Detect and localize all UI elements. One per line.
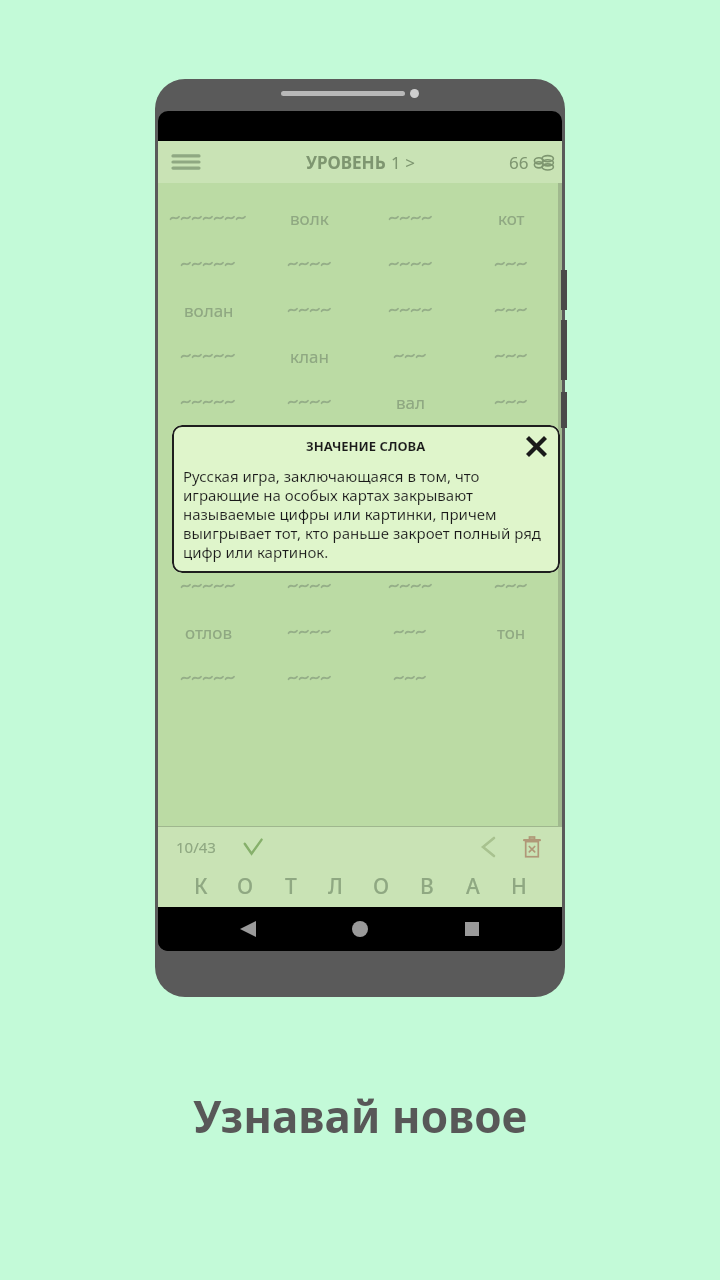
staticText: Л	[328, 872, 343, 901]
button[interactable]	[360, 517, 461, 563]
staticText: волк	[290, 207, 329, 230]
button[interactable]: кот	[461, 195, 562, 241]
button[interactable]: Check	[238, 832, 268, 862]
button[interactable]: Н	[496, 867, 542, 905]
button[interactable]: К	[178, 867, 223, 905]
staticText: Н	[511, 872, 527, 901]
button[interactable]	[360, 655, 461, 701]
button[interactable]	[158, 241, 259, 287]
button[interactable]: клан	[259, 333, 360, 379]
staticText: 1 >	[391, 151, 415, 174]
button[interactable]: тон	[461, 609, 562, 655]
button[interactable]: Л	[313, 867, 358, 905]
button[interactable]	[259, 655, 360, 701]
button[interactable]	[360, 425, 461, 471]
staticText: Т	[285, 872, 297, 901]
button[interactable]: Recent apps	[450, 907, 494, 951]
staticText: тон	[497, 621, 526, 644]
staticText: Русская игра, заключающаяся в том, что и…	[183, 466, 549, 562]
staticText: Узнавай новое	[193, 1086, 528, 1146]
button[interactable]	[461, 655, 562, 701]
button[interactable]	[259, 609, 360, 655]
button[interactable]	[461, 563, 562, 609]
button[interactable]	[360, 609, 461, 655]
button[interactable]	[158, 333, 259, 379]
button[interactable]: Delete	[516, 831, 548, 863]
button[interactable]	[360, 195, 461, 241]
staticText: волан	[184, 299, 234, 322]
staticText: кот	[498, 207, 525, 230]
button[interactable]	[360, 471, 461, 517]
button[interactable]	[259, 471, 360, 517]
button[interactable]: Т	[268, 867, 313, 905]
button[interactable]	[360, 241, 461, 287]
button[interactable]	[461, 241, 562, 287]
button[interactable]	[158, 471, 259, 517]
button[interactable]	[158, 379, 259, 425]
button[interactable]	[259, 379, 360, 425]
button[interactable]: Back	[226, 907, 270, 951]
button[interactable]: волан	[158, 287, 259, 333]
button[interactable]	[158, 563, 259, 609]
button[interactable]: вал	[360, 379, 461, 425]
button[interactable]	[360, 287, 461, 333]
staticText: 10/43	[176, 837, 216, 857]
button[interactable]: Home	[338, 907, 382, 951]
button[interactable]	[461, 517, 562, 563]
button[interactable]: О	[223, 867, 268, 905]
button[interactable]	[259, 517, 360, 563]
button[interactable]	[461, 425, 562, 471]
button[interactable]: В	[404, 867, 450, 905]
staticText: В	[420, 872, 434, 901]
button[interactable]	[158, 425, 259, 471]
staticText: О	[237, 872, 254, 901]
button[interactable]	[461, 471, 562, 517]
staticText: А	[466, 872, 480, 901]
button[interactable]: 66	[509, 151, 554, 174]
button[interactable]: Close	[523, 433, 549, 459]
button[interactable]: Menu	[166, 142, 206, 182]
button[interactable]	[259, 241, 360, 287]
button[interactable]	[158, 655, 259, 701]
button[interactable]: А	[450, 867, 496, 905]
button[interactable]: Previous	[472, 831, 504, 863]
staticText: ЗНАЧЕНИЕ СЛОВА	[306, 437, 426, 455]
staticText: 66	[509, 151, 529, 174]
staticText: К	[194, 872, 208, 901]
button[interactable]	[461, 287, 562, 333]
staticText: УРОВЕНЬ	[306, 151, 391, 174]
staticText: отлов	[185, 621, 232, 644]
button[interactable]	[360, 333, 461, 379]
button[interactable]: УРОВЕНЬ	[306, 151, 415, 174]
button[interactable]: О	[358, 867, 404, 905]
button[interactable]	[259, 287, 360, 333]
button[interactable]	[461, 333, 562, 379]
button[interactable]: волк	[259, 195, 360, 241]
staticText: О	[373, 872, 390, 901]
button[interactable]	[360, 563, 461, 609]
staticText: клан	[290, 345, 329, 368]
button[interactable]	[461, 379, 562, 425]
button[interactable]	[259, 425, 360, 471]
button[interactable]	[158, 195, 259, 241]
button[interactable]: отлов	[158, 609, 259, 655]
button[interactable]	[259, 563, 360, 609]
staticText: вал	[396, 391, 426, 414]
button[interactable]	[158, 517, 259, 563]
